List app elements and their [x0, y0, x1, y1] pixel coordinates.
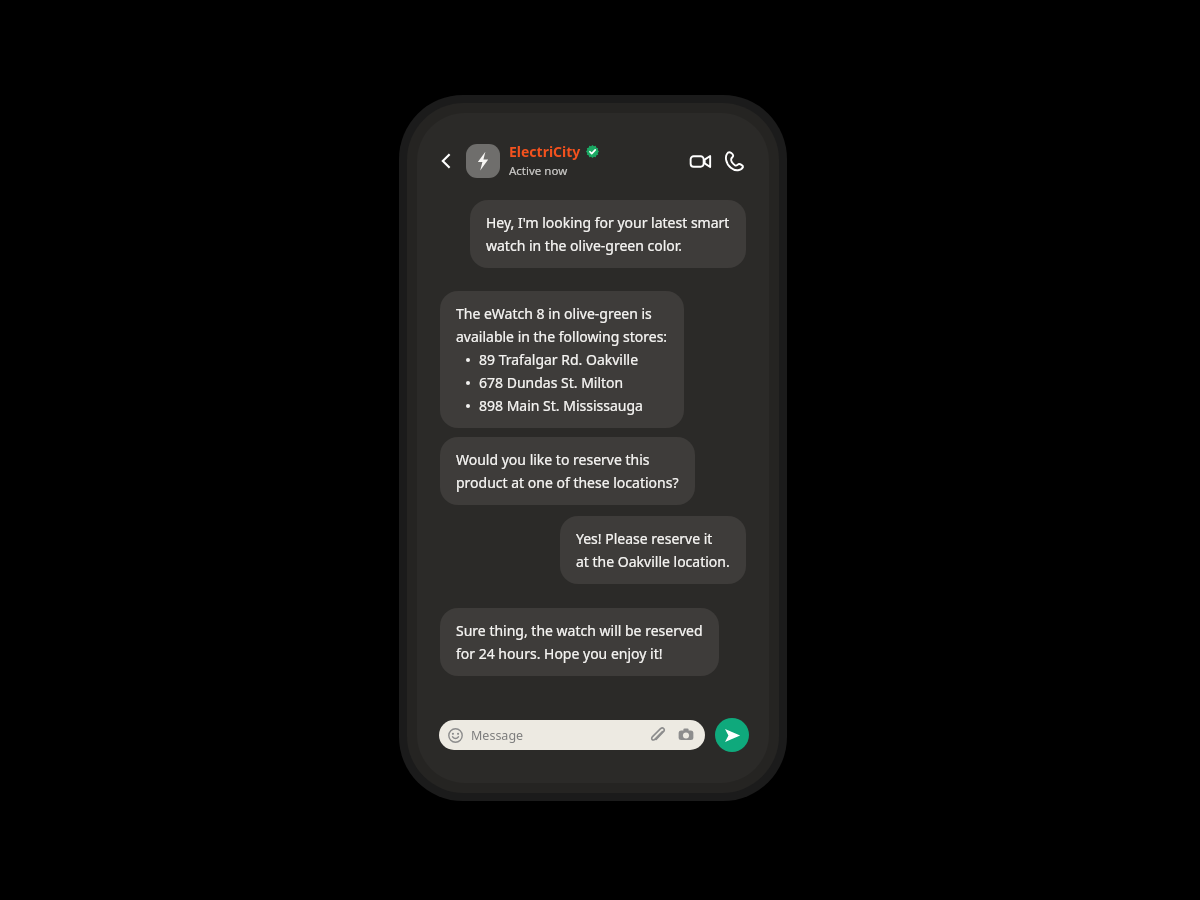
button[interactable]: Camera — [676, 725, 696, 745]
staticText: 89 Trafalgar Rd. Oakville — [479, 350, 639, 369]
staticText: product at one of these locations? — [456, 473, 679, 492]
staticText: 898 Main St. Mississauga — [479, 396, 643, 415]
button[interactable]: Voice call — [719, 146, 749, 176]
button[interactable]: The eWatch 8 in olive-green is — [440, 291, 684, 428]
staticText: for 24 hours. Hope you enjoy it! — [456, 644, 663, 663]
staticText: Sure thing, the watch will be reserved — [456, 621, 703, 640]
staticText: The eWatch 8 in olive-green is — [456, 304, 652, 323]
staticText: Active now — [509, 163, 568, 179]
staticText: Yes! Please reserve it — [576, 529, 713, 548]
button[interactable]: ElectriCity profile — [466, 144, 500, 178]
button[interactable]: Send — [715, 718, 749, 752]
staticText: ElectriCity — [509, 142, 581, 161]
button[interactable]: Back — [431, 146, 461, 176]
staticText: 678 Dundas St. Milton — [479, 373, 624, 392]
button[interactable]: Hey, I'm looking for your latest smart — [470, 200, 746, 268]
button[interactable]: Message — [439, 720, 705, 750]
button[interactable]: Yes! Please reserve it — [560, 516, 746, 584]
button[interactable]: Video call — [685, 146, 715, 176]
staticText: Would you like to reserve this — [456, 450, 650, 469]
staticText: available in the following stores: — [456, 327, 668, 346]
staticText: Message — [471, 727, 524, 744]
button[interactable]: Would you like to reserve this — [440, 437, 695, 505]
button[interactable]: Sure thing, the watch will be reserved — [440, 608, 719, 676]
staticText: Hey, I'm looking for your latest smart — [486, 213, 730, 232]
staticText: watch in the olive-green color. — [486, 236, 683, 255]
staticText: at the Oakville location. — [576, 552, 730, 571]
button[interactable]: Attach file — [648, 725, 668, 745]
